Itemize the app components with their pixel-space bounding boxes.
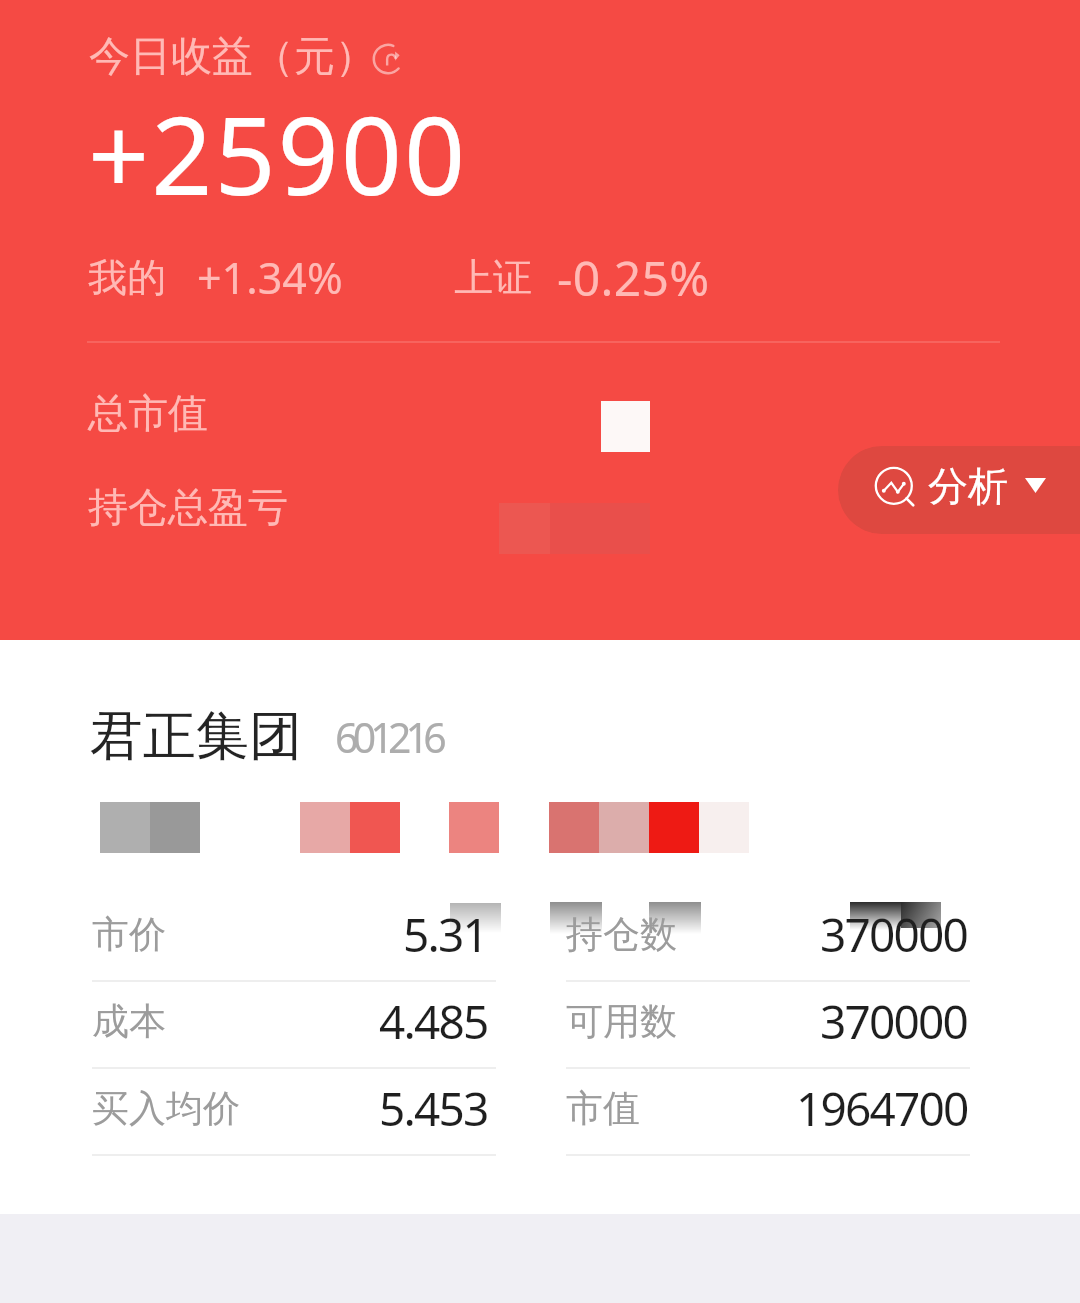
staticText: 上证 — [454, 253, 532, 302]
staticText: 370000 — [820, 903, 968, 966]
staticText: 601216 — [335, 709, 441, 765]
staticText: 5.31 — [403, 903, 488, 966]
staticText: +25900 — [88, 81, 468, 227]
button[interactable]: 持仓数 — [566, 894, 970, 982]
staticText: 成本 — [92, 998, 166, 1045]
staticText: 总市值 — [88, 388, 208, 438]
button[interactable]: 市价 — [92, 894, 496, 982]
button[interactable]: 成本 — [92, 981, 496, 1069]
staticText: 市值 — [566, 1085, 640, 1132]
staticText: +1.34% — [197, 248, 343, 307]
button[interactable]: 君正集团 — [90, 695, 450, 770]
staticText: 今日收益（元） — [89, 31, 376, 83]
staticText: -0.25% — [557, 245, 710, 310]
staticText: 分析 — [928, 461, 1008, 511]
staticText: 君正集团 — [90, 703, 302, 770]
staticText: 持仓总盈亏 — [88, 482, 288, 532]
staticText: 市价 — [92, 911, 166, 958]
staticText: 4.485 — [379, 990, 488, 1053]
button[interactable]: 分析 — [838, 446, 1080, 534]
button[interactable]: 买入均价 — [92, 1068, 496, 1156]
button[interactable]: 可用数 — [566, 981, 970, 1069]
button[interactable]: 市值 — [566, 1068, 970, 1156]
staticText: 370000 — [820, 990, 968, 1053]
staticText: 可用数 — [566, 998, 677, 1045]
staticText: 我的 — [88, 253, 166, 302]
button[interactable]: Refresh — [363, 34, 413, 84]
staticText: 5.453 — [379, 1077, 488, 1140]
staticText: 持仓数 — [566, 911, 677, 958]
staticText: 1964700 — [796, 1077, 968, 1140]
staticText: 买入均价 — [92, 1085, 240, 1132]
